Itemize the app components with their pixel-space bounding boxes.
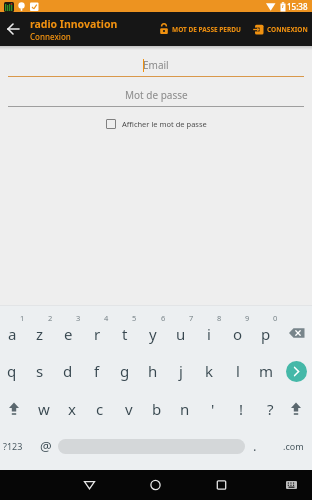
button[interactable]: d — [54, 352, 82, 390]
staticText: 9 — [245, 313, 250, 322]
staticText: 2 — [48, 313, 53, 322]
staticText: Afficher le mot de passe — [122, 119, 207, 129]
button[interactable]: a — [0, 315, 26, 353]
button[interactable] — [209, 473, 234, 497]
button[interactable] — [77, 473, 102, 497]
staticText: ! — [239, 399, 244, 419]
button[interactable]: n — [171, 390, 199, 428]
staticText: j — [179, 361, 183, 381]
staticText: o — [233, 324, 243, 344]
staticText: 3 — [76, 313, 81, 322]
staticText: . — [253, 437, 257, 455]
staticText: ' — [211, 399, 215, 419]
staticText: b — [152, 399, 162, 419]
staticText: c — [96, 399, 104, 419]
button[interactable] — [286, 361, 307, 382]
staticText: .com — [283, 440, 304, 452]
button[interactable]: u — [167, 315, 195, 353]
staticText: Connexion — [30, 31, 71, 42]
staticText: i — [207, 324, 211, 344]
button[interactable]: q — [0, 352, 26, 390]
button[interactable] — [284, 397, 308, 421]
button[interactable]: i — [195, 315, 223, 353]
staticText: q — [7, 361, 17, 381]
button[interactable]: z — [26, 315, 54, 353]
staticText: 1 — [20, 313, 25, 322]
staticText: h — [148, 361, 158, 381]
button[interactable] — [282, 473, 304, 497]
staticText: d — [63, 361, 73, 381]
button[interactable]: p — [252, 315, 280, 353]
staticText: p — [261, 324, 271, 344]
staticText: u — [176, 324, 186, 344]
staticText: 0 — [273, 313, 278, 322]
staticText: ? — [267, 399, 274, 419]
button[interactable]: Email — [0, 58, 312, 72]
button[interactable]: b — [143, 390, 171, 428]
staticText: f — [94, 361, 100, 381]
button[interactable]: m — [252, 352, 280, 390]
button[interactable]: r — [83, 315, 111, 353]
button[interactable]: y — [139, 315, 167, 353]
button[interactable]: s — [26, 352, 54, 390]
button[interactable]: h — [139, 352, 167, 390]
button[interactable]: x — [58, 390, 86, 428]
staticText: radio Innovation — [30, 17, 118, 31]
button[interactable]: ' — [199, 390, 227, 428]
staticText: 8 — [217, 313, 222, 322]
button[interactable]: CONNEXION — [251, 22, 310, 37]
staticText: l — [236, 361, 240, 381]
button[interactable]: . — [246, 436, 264, 456]
staticText: x — [68, 399, 76, 419]
staticText: 4 — [104, 313, 109, 322]
button[interactable]: e — [54, 315, 82, 353]
staticText: n — [180, 399, 190, 419]
button[interactable]: ?123 — [1, 436, 25, 456]
staticText: 5 — [132, 313, 137, 322]
staticText: m — [259, 361, 274, 381]
button[interactable]: c — [86, 390, 114, 428]
button[interactable] — [143, 473, 168, 497]
staticText: MOT DE PASSE PERDU — [172, 25, 241, 34]
staticText: ?123 — [3, 440, 23, 452]
staticText: a — [8, 324, 17, 344]
staticText: 7 — [189, 313, 194, 322]
staticText: 15:38 — [287, 1, 308, 12]
staticText: s — [36, 361, 44, 381]
button[interactable]: t — [111, 315, 139, 353]
staticText: y — [149, 324, 157, 344]
button[interactable]: @ — [34, 436, 58, 456]
button[interactable]: l — [224, 352, 252, 390]
staticText: Email — [143, 58, 169, 72]
button[interactable]: g — [111, 352, 139, 390]
staticText: Mot de passe — [125, 88, 188, 102]
button[interactable]: Afficher le mot de passe — [0, 117, 312, 130]
button[interactable]: k — [195, 352, 223, 390]
staticText: t — [122, 324, 128, 344]
button[interactable]: o — [224, 315, 252, 353]
button[interactable]: f — [83, 352, 111, 390]
button[interactable]: MOT DE PASSE PERDU — [157, 21, 243, 37]
button[interactable] — [2, 397, 26, 421]
button[interactable] — [282, 319, 312, 347]
button[interactable] — [0, 12, 26, 46]
button[interactable]: w — [30, 390, 58, 428]
staticText: 6 — [161, 313, 166, 322]
staticText: @ — [40, 437, 52, 455]
button[interactable]: j — [167, 352, 195, 390]
button[interactable]: ? — [256, 390, 284, 428]
staticText: z — [36, 324, 44, 344]
button[interactable]: Mot de passe — [0, 88, 312, 102]
staticText: v — [125, 399, 133, 419]
staticText: k — [205, 361, 214, 381]
staticText: CONNEXION — [267, 25, 308, 34]
staticText: e — [64, 324, 73, 344]
staticText: g — [120, 361, 130, 381]
button[interactable]: v — [115, 390, 143, 428]
staticText: r — [94, 324, 101, 344]
staticText: w — [38, 399, 50, 419]
button[interactable]: ! — [227, 390, 255, 428]
button[interactable]: .com — [278, 436, 308, 456]
